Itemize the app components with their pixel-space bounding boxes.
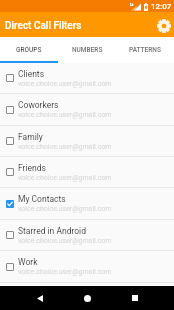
staticText: Friends (18, 163, 46, 173)
staticText: GROUPS (16, 46, 42, 54)
staticText: voice.choice.user@gmail.com (18, 237, 112, 245)
staticText: My Contacts (18, 194, 66, 204)
button[interactable]: GROUPS (0, 37, 58, 63)
staticText: voice.choice.user@gmail.com (18, 111, 112, 119)
staticText: voice.choice.user@gmail.com (18, 80, 112, 88)
staticText: voice.choice.user@gmail.com (18, 174, 112, 182)
button[interactable]: Recent apps (123, 286, 147, 310)
staticText: 12:07 (151, 2, 172, 11)
staticText: voice.choice.user@gmail.com (18, 143, 112, 151)
staticText: Work (18, 257, 38, 267)
staticText: Coworkers (18, 100, 59, 110)
staticText: NUMBERS (72, 46, 103, 54)
staticText: voice.choice.user@gmail.com (18, 268, 112, 276)
button[interactable]: Starred in Android (0, 220, 174, 251)
button[interactable]: Settings (154, 16, 173, 35)
button[interactable]: Home (75, 286, 99, 310)
staticText: voice.choice.user@gmail.com (18, 205, 112, 213)
staticText: Direct Call Filters (5, 20, 82, 32)
button[interactable]: Coworkers (0, 94, 174, 126)
button[interactable]: Friends (0, 157, 174, 188)
button[interactable]: Work (0, 251, 174, 283)
button[interactable]: Back (28, 286, 52, 310)
button[interactable]: Clients (0, 63, 174, 94)
button[interactable]: NUMBERS (58, 37, 116, 63)
staticText: Clients (18, 69, 45, 79)
button[interactable]: My Contacts (0, 188, 174, 220)
staticText: PATTERNS (129, 46, 161, 54)
button[interactable]: PATTERNS (116, 37, 174, 63)
staticText: Starred in Android (18, 226, 86, 236)
button[interactable]: Family (0, 126, 174, 157)
staticText: Family (18, 132, 43, 142)
